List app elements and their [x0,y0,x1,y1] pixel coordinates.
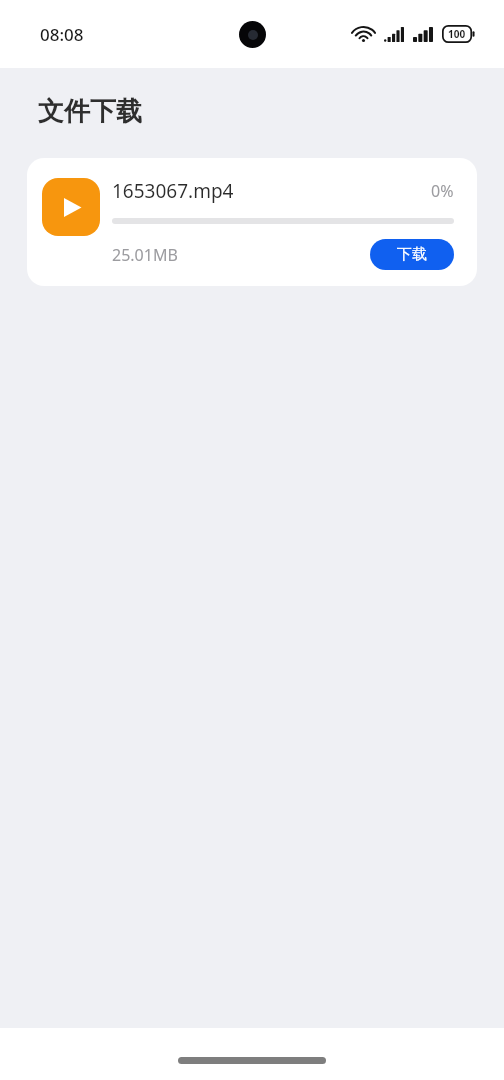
staticText: 1653067.mp4 [112,178,431,204]
staticText: 08:08 [40,23,84,46]
staticText: 100 [448,27,466,41]
staticText: 下载 [397,245,427,264]
button[interactable]: Video file [27,158,477,286]
other: Video file [42,178,100,236]
staticText: 0% [431,180,454,202]
staticText: 25.01MB [112,244,370,266]
staticText: 文件下载 [38,95,142,128]
button[interactable]: 下载 [370,239,454,270]
